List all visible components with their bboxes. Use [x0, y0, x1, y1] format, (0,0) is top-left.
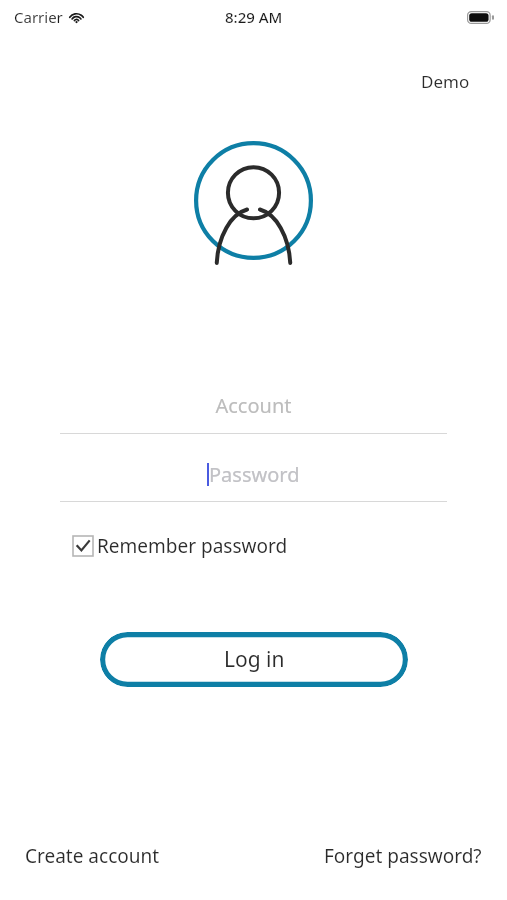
- button[interactable]: Remember password: [73, 533, 288, 559]
- button[interactable]: Forget password?: [324, 843, 482, 869]
- staticText: Password: [209, 461, 300, 488]
- staticText: 8:29 AM: [225, 7, 283, 27]
- other: Profile avatar: [194, 141, 313, 260]
- button[interactable]: Create account: [25, 843, 160, 869]
- staticText: Log in: [224, 645, 285, 674]
- button[interactable]: Demo: [421, 70, 470, 93]
- button[interactable]: Log in: [100, 632, 408, 687]
- staticText: Forget password?: [324, 843, 482, 869]
- staticText: Create account: [25, 843, 160, 869]
- button[interactable]: Password: [60, 461, 447, 502]
- staticText: Demo: [421, 70, 470, 93]
- staticText: Remember password: [97, 533, 288, 559]
- staticText: Account: [60, 392, 447, 419]
- staticText: Carrier: [14, 7, 63, 27]
- button[interactable]: Account: [60, 392, 447, 434]
